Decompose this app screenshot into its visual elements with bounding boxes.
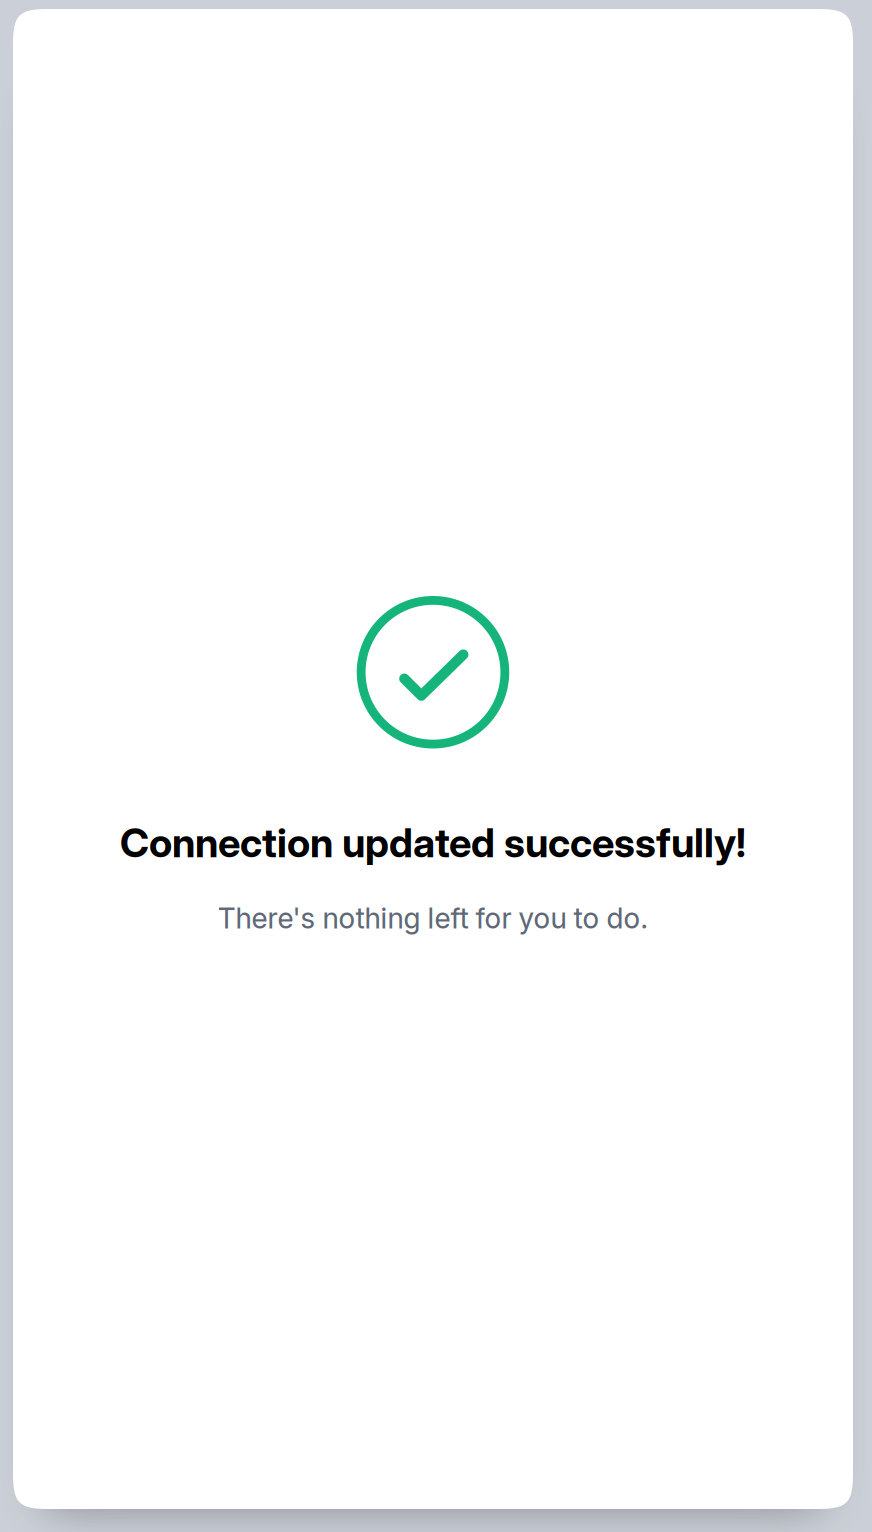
staticText: There's nothing left for you to do.	[217, 901, 648, 935]
staticText: Connection updated successfully!	[120, 818, 746, 867]
